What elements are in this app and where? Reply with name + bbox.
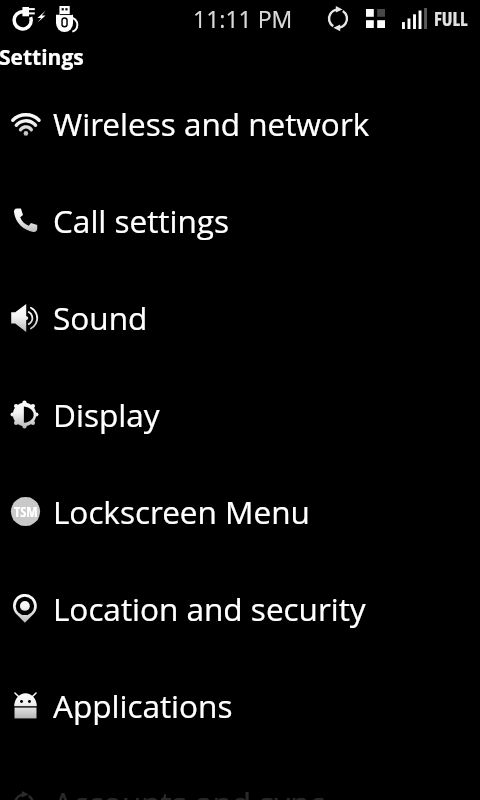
button[interactable]: Accounts and sync <box>0 755 480 800</box>
button[interactable]: Display <box>0 367 480 464</box>
staticText: Display <box>53 393 160 436</box>
staticText: FULL <box>434 6 468 32</box>
staticText: Sound <box>53 296 148 339</box>
other: Sync active <box>327 6 349 31</box>
staticText: 11:11 PM <box>193 3 293 34</box>
staticText: TSM <box>14 502 38 522</box>
button[interactable]: Sound <box>0 270 480 367</box>
staticText: Location and security <box>53 587 366 630</box>
button[interactable]: Wireless and network <box>0 76 480 173</box>
button[interactable]: Location and security <box>0 561 480 658</box>
staticText: Call settings <box>53 199 230 242</box>
button[interactable]: TSM <box>0 464 480 561</box>
staticText: Settings <box>0 43 84 72</box>
staticText: Accounts and sync <box>53 781 325 800</box>
other: Mobile data <box>366 9 385 28</box>
button[interactable]: Applications <box>0 658 480 755</box>
staticText: Wireless and network <box>53 102 370 145</box>
other: Charging <box>12 7 46 31</box>
other: Signal strength <box>402 8 427 29</box>
staticText: Lockscreen Menu <box>53 490 310 533</box>
other: USB connected <box>56 6 77 32</box>
button[interactable]: Call settings <box>0 173 480 270</box>
staticText: Applications <box>53 684 233 727</box>
